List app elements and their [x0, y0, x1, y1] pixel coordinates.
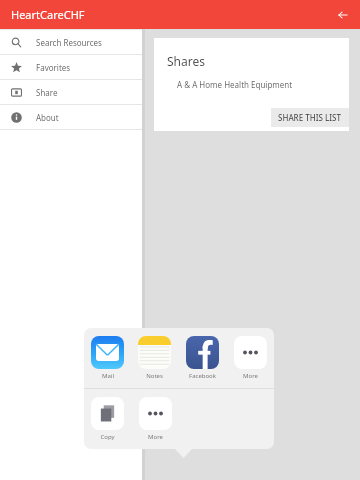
button[interactable]: Notes	[131, 328, 178, 388]
staticText: SHARE THIS LIST	[278, 112, 342, 123]
staticText: Search Resources	[36, 37, 102, 48]
button[interactable]: Search Resources	[0, 30, 142, 54]
button[interactable]: Facebook	[178, 328, 226, 388]
staticText: About	[36, 112, 59, 123]
staticText: More	[148, 433, 163, 441]
staticText: Share	[36, 87, 58, 98]
staticText: More	[243, 372, 258, 380]
staticText: Notes	[146, 372, 163, 380]
button[interactable]: About	[0, 105, 142, 129]
staticText: Mail	[102, 372, 114, 380]
staticText: Copy	[100, 433, 115, 441]
button[interactable]: SHARE THIS LIST	[271, 108, 349, 127]
staticText: Shares	[167, 53, 205, 69]
button[interactable]: Back	[331, 3, 355, 27]
button[interactable]: More	[131, 389, 179, 449]
button[interactable]: Copy	[84, 389, 131, 449]
staticText: HeartCareCHF	[11, 7, 85, 22]
staticText: Favorites	[36, 62, 71, 73]
staticText: Facebook	[189, 372, 216, 380]
button[interactable]: Favorites	[0, 55, 142, 79]
staticText: A & A Home Health Equipment	[177, 79, 293, 90]
button[interactable]: Share	[0, 80, 142, 104]
button[interactable]: More	[226, 328, 274, 388]
button[interactable]: Mail	[84, 328, 131, 388]
